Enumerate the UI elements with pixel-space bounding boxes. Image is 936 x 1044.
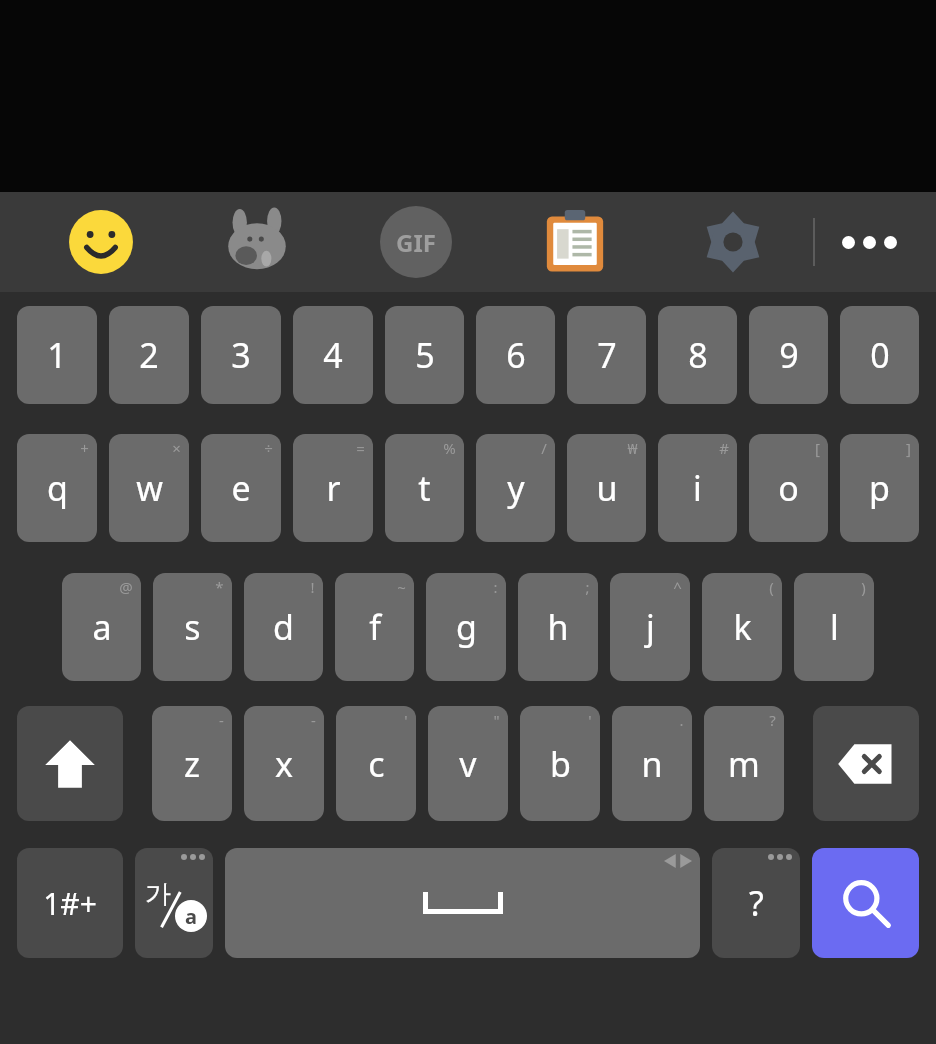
button[interactable]: h <box>518 573 598 681</box>
button[interactable]: 4 <box>293 306 373 404</box>
button[interactable]: 1 <box>17 306 97 404</box>
staticText: . <box>679 710 684 730</box>
button[interactable]: 9 <box>749 306 828 404</box>
button[interactable]: 8 <box>658 306 737 404</box>
staticText: % <box>443 438 456 458</box>
staticText: 9 <box>779 332 799 378</box>
staticText: u <box>596 465 618 511</box>
button[interactable]: Shift <box>17 706 123 821</box>
button[interactable]: Settings <box>692 192 774 292</box>
staticText: / <box>541 438 547 458</box>
staticText: 0 <box>870 332 890 378</box>
button[interactable]: b <box>520 706 600 821</box>
button[interactable]: a <box>62 573 141 681</box>
button[interactable]: Space <box>225 848 700 958</box>
button[interactable]: Stickers <box>216 192 298 292</box>
staticText: " <box>493 710 500 730</box>
button[interactable]: 2 <box>109 306 189 404</box>
button[interactable]: l <box>794 573 874 681</box>
button[interactable]: c <box>336 706 416 821</box>
staticText: o <box>778 465 799 511</box>
staticText: h <box>547 604 569 650</box>
button[interactable]: m <box>704 706 784 821</box>
staticText: @ <box>119 577 133 597</box>
button[interactable]: y <box>476 434 555 542</box>
staticText: 6 <box>506 332 526 378</box>
button[interactable]: Change language <box>135 848 213 958</box>
staticText: * <box>215 577 224 597</box>
button[interactable]: f <box>335 573 414 681</box>
button[interactable]: g <box>426 573 506 681</box>
staticText: ; <box>585 577 590 597</box>
button[interactable]: s <box>153 573 232 681</box>
staticText: ? <box>769 710 776 730</box>
button[interactable]: 1#+ <box>17 848 123 958</box>
button[interactable]: 5 <box>385 306 464 404</box>
button[interactable]: Backspace <box>813 706 919 821</box>
staticText: 8 <box>688 332 708 378</box>
button[interactable]: Search <box>812 848 919 958</box>
staticText: g <box>456 604 477 650</box>
staticText: t <box>418 465 431 511</box>
button[interactable]: ? <box>712 848 800 958</box>
button[interactable]: x <box>244 706 324 821</box>
button[interactable]: v <box>428 706 508 821</box>
staticText: i <box>693 465 702 511</box>
staticText: 3 <box>231 332 251 378</box>
staticText: 7 <box>597 332 617 378</box>
staticText: f <box>369 604 381 650</box>
staticText: l <box>830 604 839 650</box>
staticText: # <box>719 438 729 458</box>
button[interactable]: e <box>201 434 281 542</box>
staticText: ( <box>769 577 774 597</box>
staticText: 5 <box>415 332 435 378</box>
button[interactable]: 7 <box>567 306 646 404</box>
staticText: s <box>184 604 201 650</box>
staticText: + <box>80 438 89 458</box>
button[interactable]: o <box>749 434 828 542</box>
staticText: ) <box>861 577 866 597</box>
button[interactable]: u <box>567 434 646 542</box>
button[interactable]: w <box>109 434 189 542</box>
button[interactable]: d <box>244 573 323 681</box>
staticText: × <box>172 438 181 458</box>
button[interactable]: 0 <box>840 306 919 404</box>
button[interactable]: Clipboard <box>534 192 616 292</box>
button[interactable]: i <box>658 434 737 542</box>
button[interactable]: 3 <box>201 306 281 404</box>
staticText: 2 <box>139 332 159 378</box>
staticText: ~ <box>397 577 406 597</box>
button[interactable]: t <box>385 434 464 542</box>
button[interactable]: z <box>152 706 232 821</box>
button[interactable]: r <box>293 434 373 542</box>
staticText: = <box>356 438 365 458</box>
staticText: n <box>641 741 663 787</box>
staticText: k <box>733 604 752 650</box>
staticText: 4 <box>323 332 343 378</box>
button[interactable]: k <box>702 573 782 681</box>
staticText: e <box>231 465 251 511</box>
staticText: z <box>184 741 200 787</box>
button[interactable]: n <box>612 706 692 821</box>
staticText: 1 <box>47 332 67 378</box>
staticText: - <box>219 710 224 730</box>
staticText: j <box>646 604 655 650</box>
button[interactable]: Emoji <box>60 192 142 292</box>
button[interactable]: GIF <box>375 192 457 292</box>
button[interactable]: q <box>17 434 97 542</box>
staticText: : <box>493 577 498 597</box>
button[interactable]: 6 <box>476 306 555 404</box>
staticText: b <box>550 741 571 787</box>
staticText: v <box>459 741 477 787</box>
staticText: a <box>92 604 112 650</box>
button[interactable]: More options <box>828 192 910 292</box>
staticText: p <box>869 465 890 511</box>
staticText: ! <box>310 577 315 597</box>
staticText: [ <box>815 438 820 458</box>
staticText: m <box>728 741 760 787</box>
staticText: r <box>326 465 341 511</box>
button[interactable]: j <box>610 573 690 681</box>
button[interactable]: p <box>840 434 919 542</box>
staticText: GIF <box>396 226 436 259</box>
staticText: ? <box>749 880 764 926</box>
